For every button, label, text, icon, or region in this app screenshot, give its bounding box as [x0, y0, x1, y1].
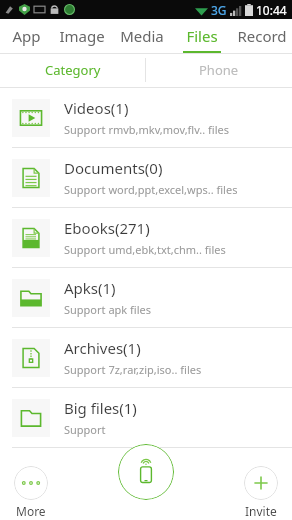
button[interactable]: App — [0, 19, 52, 53]
staticText: Support word,ppt,excel,wps.. files — [64, 182, 238, 197]
staticText: Archives(1) — [64, 338, 141, 358]
button[interactable]: Big files(1) — [0, 388, 292, 447]
button[interactable]: Invite — [244, 466, 278, 519]
staticText: 3G — [211, 2, 227, 18]
staticText: Record — [237, 26, 287, 46]
staticText: Category — [45, 61, 101, 79]
staticText: Videos(1) — [64, 98, 129, 118]
staticText: Support apk files — [64, 302, 151, 317]
button[interactable]: More — [14, 466, 48, 519]
staticText: Support umd,ebk,txt,chm.. files — [64, 242, 226, 257]
button[interactable]: Apks(1) — [0, 268, 292, 327]
staticText: Support 7z,rar,zip,iso.. files — [64, 362, 202, 377]
button[interactable]: Files — [172, 19, 232, 53]
button[interactable]: Image — [52, 19, 112, 53]
staticText: Media — [120, 26, 164, 46]
button[interactable]: Archives(1) — [0, 328, 292, 387]
staticText: Invite — [245, 503, 277, 519]
staticText: More — [16, 503, 46, 519]
other: Connect phone — [118, 444, 174, 500]
staticText: Support rmvb,mkv,mov,flv.. files — [64, 122, 230, 137]
staticText: Apks(1) — [64, 278, 116, 298]
staticText: Big files(1) — [64, 398, 137, 418]
other: More — [14, 466, 48, 500]
staticText: Image — [59, 26, 105, 46]
button[interactable]: Phone — [146, 53, 292, 87]
button[interactable]: Category — [0, 53, 145, 87]
button[interactable]: Documents(0) — [0, 148, 292, 207]
staticText: 10:44 — [256, 2, 287, 18]
staticText: Ebooks(271) — [64, 218, 150, 238]
button[interactable]: Record — [232, 19, 292, 53]
staticText: Phone — [199, 61, 239, 79]
button[interactable]: Media — [112, 19, 172, 53]
other: Invite — [244, 466, 278, 500]
staticText: App — [12, 26, 41, 46]
button[interactable]: Videos(1) — [0, 88, 292, 147]
staticText: Support — [64, 422, 106, 437]
staticText: Documents(0) — [64, 158, 163, 178]
button[interactable]: Connect phone — [103, 444, 189, 506]
button[interactable]: Ebooks(271) — [0, 208, 292, 267]
staticText: Files — [186, 26, 218, 46]
